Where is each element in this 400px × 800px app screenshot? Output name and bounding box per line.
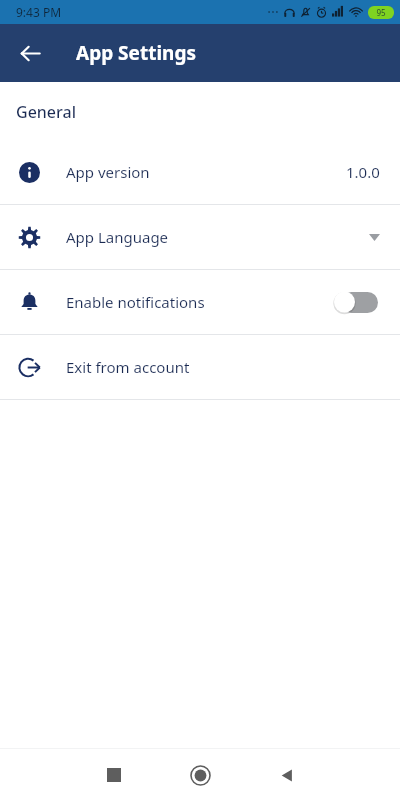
staticText: Enable notifications	[66, 292, 205, 312]
button[interactable]: Back	[264, 753, 308, 797]
button[interactable]: App Language	[0, 205, 400, 269]
staticText: App Settings	[76, 40, 196, 66]
staticText: App Language	[66, 227, 169, 247]
button[interactable]: Back	[8, 31, 52, 75]
staticText: Exit from account	[66, 357, 190, 377]
staticText: App version	[66, 162, 150, 182]
button[interactable]: Home	[178, 753, 222, 797]
button[interactable]: Exit from account	[0, 335, 400, 399]
staticText: 1.0.0	[346, 162, 380, 182]
button[interactable]: Recents	[92, 753, 136, 797]
button[interactable]: App version	[0, 140, 400, 204]
button[interactable]: Enable notifications toggle	[332, 290, 380, 314]
staticText: 95	[376, 7, 386, 18]
staticText: General	[16, 101, 76, 123]
button[interactable]: Enable notifications	[0, 270, 400, 334]
staticText: 9:43 PM	[16, 4, 62, 20]
